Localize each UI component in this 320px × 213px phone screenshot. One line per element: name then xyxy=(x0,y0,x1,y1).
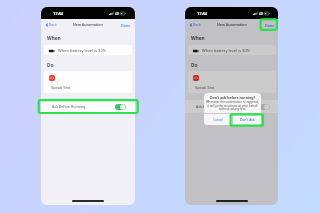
staticText: Ask Before Running xyxy=(196,104,230,109)
staticText: Back xyxy=(193,22,201,27)
staticText: 40 xyxy=(115,11,119,16)
staticText: Speak Text xyxy=(195,85,215,90)
button[interactable]: Back xyxy=(45,21,58,28)
button[interactable]: Don't Ask xyxy=(233,114,261,125)
button[interactable]: Back xyxy=(189,21,202,28)
staticText: 17:44 xyxy=(53,11,63,16)
staticText: When xyxy=(47,35,61,42)
staticText: 40 xyxy=(259,11,263,16)
staticText: Cancel xyxy=(213,118,223,122)
staticText: When xyxy=(191,35,205,42)
button[interactable]: Speak Text xyxy=(44,71,132,93)
staticText: When battery level is 30% xyxy=(202,48,250,53)
staticText: New Automation xyxy=(217,22,247,27)
button[interactable]: Ask Before Running xyxy=(185,100,278,113)
staticText: 17:44 xyxy=(197,11,207,16)
button[interactable]: Ask Before Running xyxy=(41,100,135,113)
button[interactable]: Done xyxy=(119,21,133,30)
staticText: Speak Text xyxy=(51,85,71,90)
staticText: When battery level is 30% xyxy=(58,48,106,53)
staticText: Do xyxy=(47,62,54,69)
staticText: Back xyxy=(49,22,57,27)
button[interactable]: When battery level is 30% xyxy=(44,45,132,55)
button[interactable]: When battery level is 30% xyxy=(188,45,276,55)
button[interactable]: Speak Text xyxy=(188,71,276,93)
staticText: Whenever this automation is triggered, i… xyxy=(204,100,261,111)
staticText: Don't Ask xyxy=(240,118,255,122)
staticText: Don't ask before running? xyxy=(204,95,261,100)
staticText: Do xyxy=(191,62,198,69)
button[interactable]: Done xyxy=(263,21,277,30)
staticText: New Automation xyxy=(73,22,103,27)
staticText: Ask Before Running xyxy=(52,104,86,109)
button[interactable]: Cancel xyxy=(204,114,232,125)
